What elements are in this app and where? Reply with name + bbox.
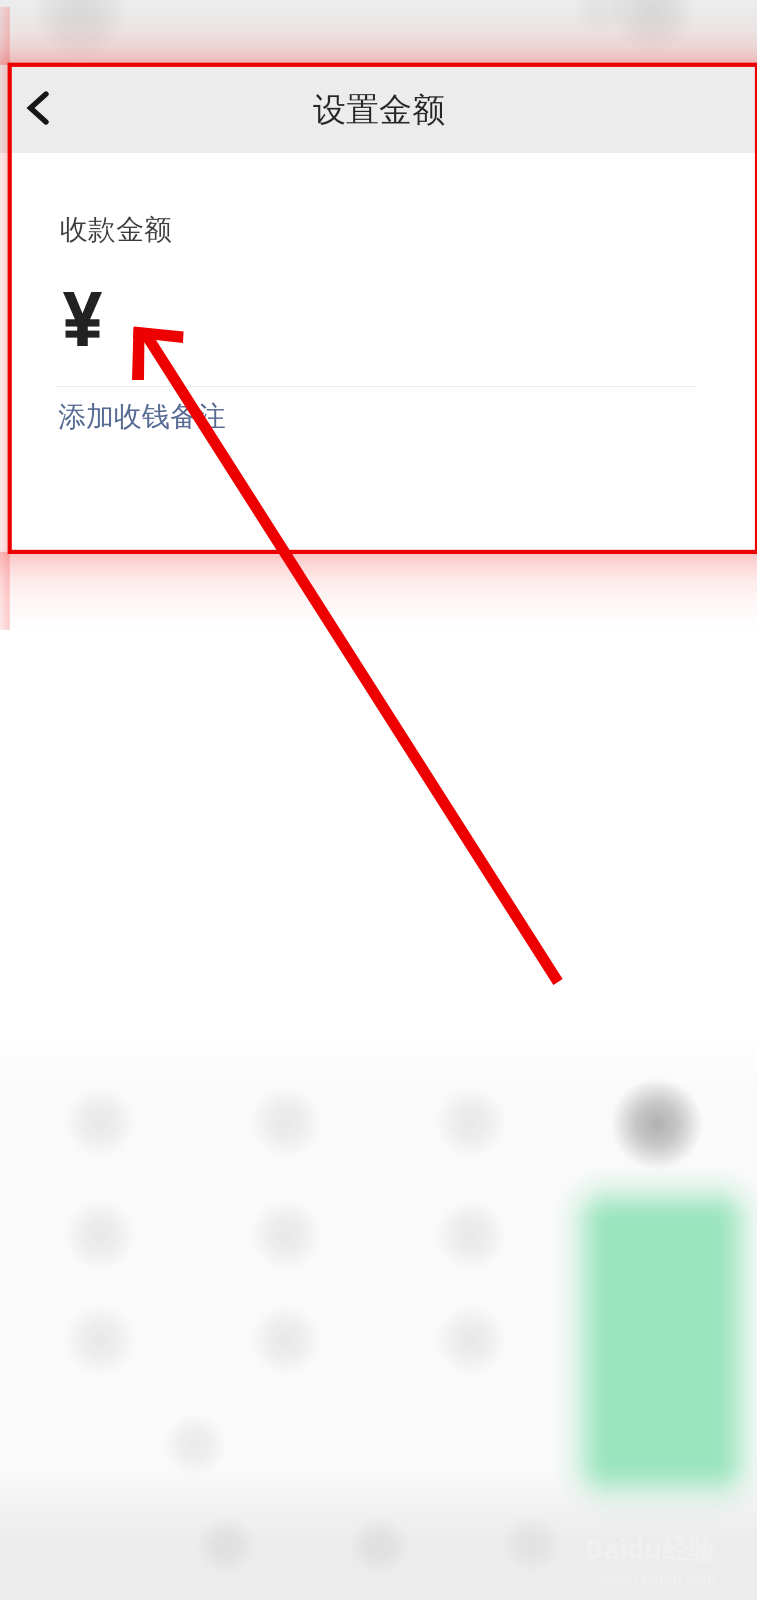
staticText: 收款金额 <box>60 212 172 247</box>
button[interactable]: 添加收钱备注 <box>58 399 226 434</box>
staticText: 设置金额 <box>313 89 445 131</box>
button[interactable]: Back <box>0 60 80 153</box>
